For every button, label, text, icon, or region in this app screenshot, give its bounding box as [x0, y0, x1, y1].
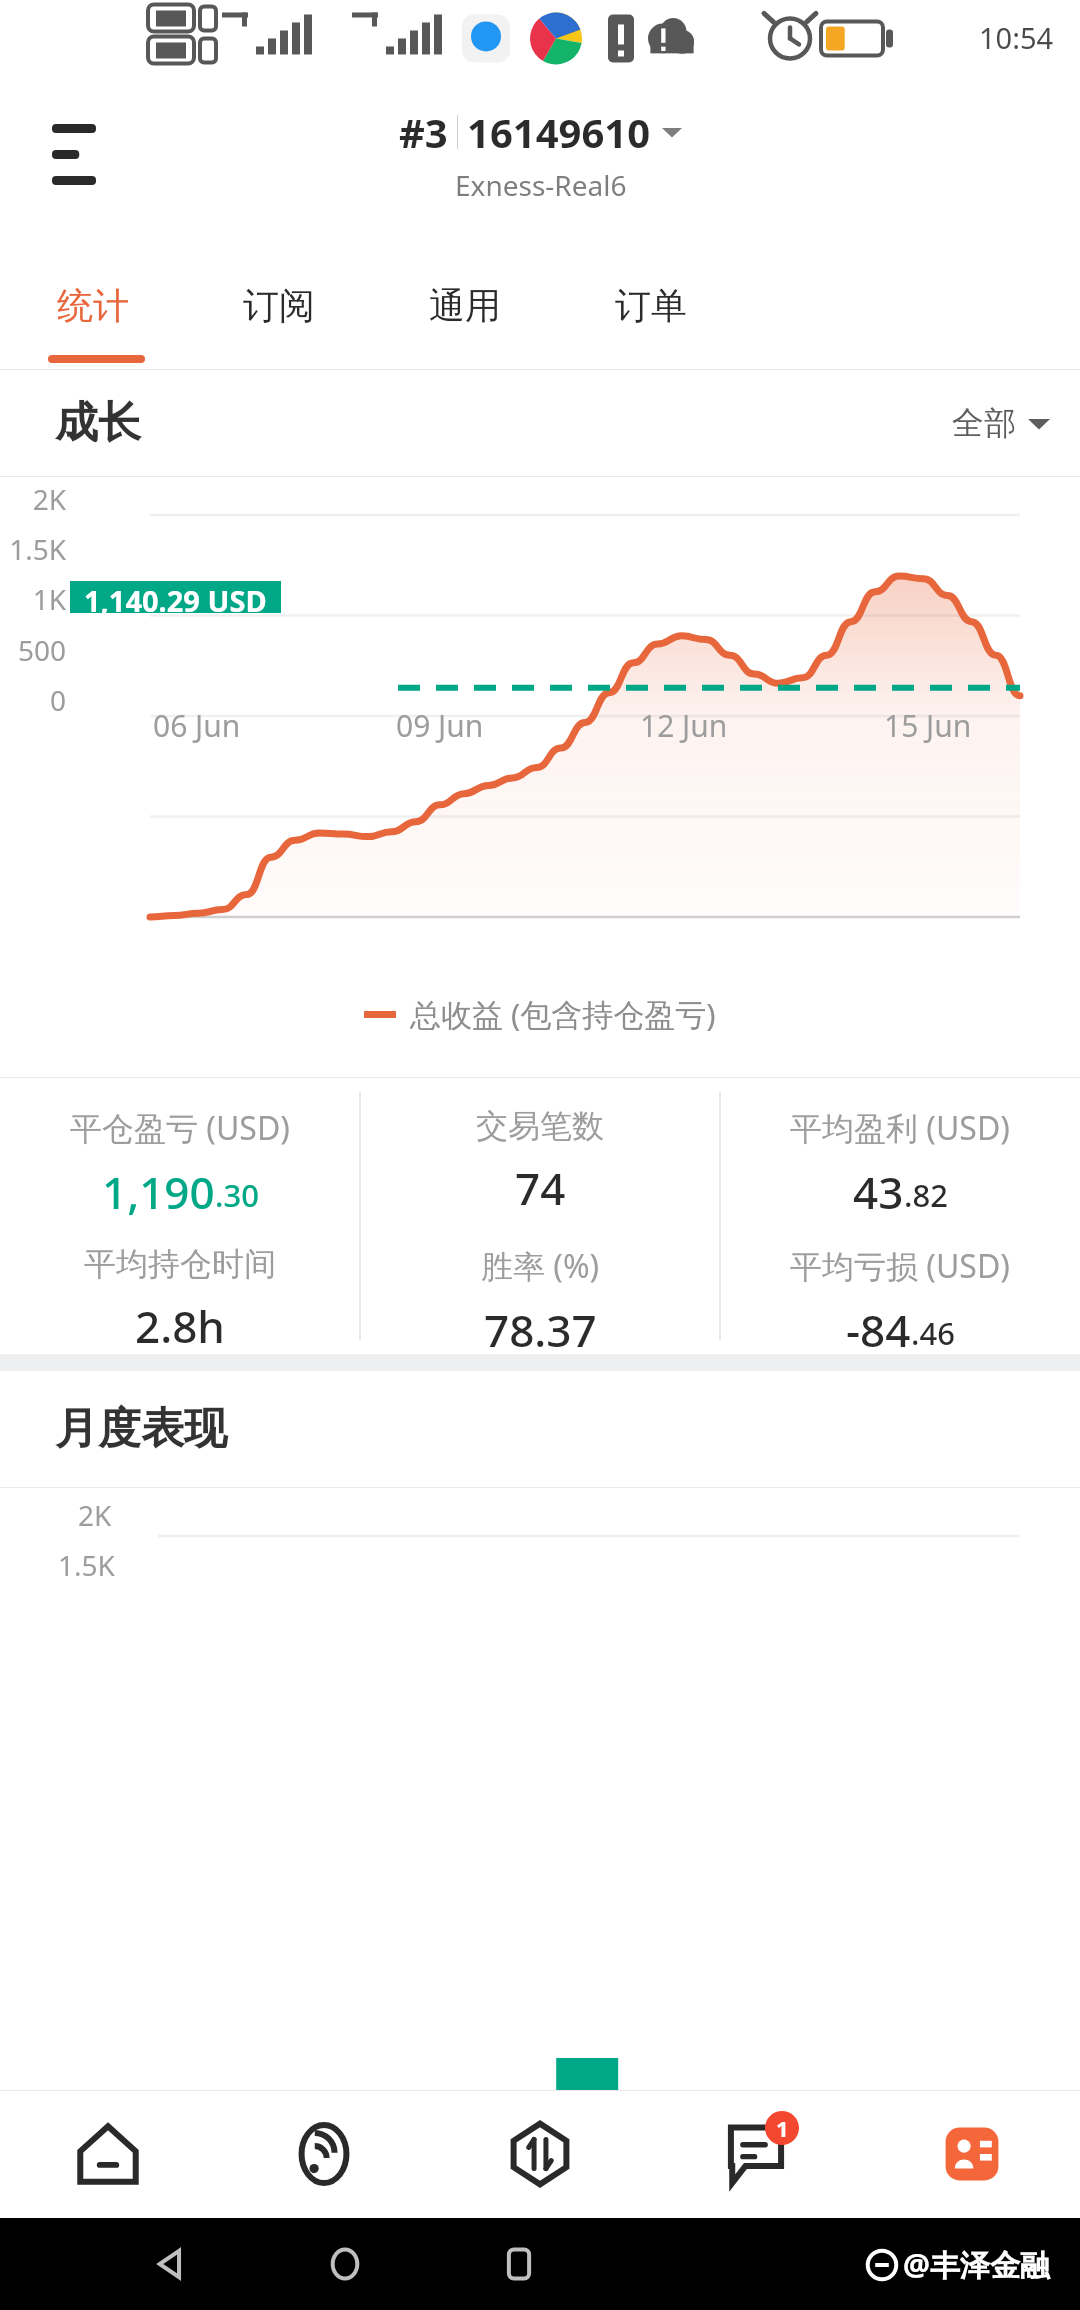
staticText: 10:54: [979, 18, 1054, 57]
button[interactable]: Recents: [497, 2242, 541, 2286]
staticText: 平均亏损 (USD): [790, 1244, 1010, 1288]
staticText: 订阅: [243, 283, 315, 328]
button[interactable]: 统计: [0, 234, 186, 369]
staticText: 43: [853, 1162, 904, 1216]
staticText: 78.37: [484, 1300, 597, 1354]
staticText: 平均持仓时间: [84, 1244, 276, 1284]
staticText: 1: [776, 2113, 789, 2143]
staticText: 2K: [0, 480, 66, 518]
staticText: -84: [846, 1300, 911, 1354]
staticText: #3: [399, 105, 448, 159]
button[interactable]: Home: [0, 2090, 216, 2218]
staticText: 统计: [57, 283, 129, 328]
button[interactable]: Back: [150, 2242, 194, 2286]
staticText: 2K: [78, 1496, 112, 1534]
staticText: @丰泽金融: [903, 2244, 1050, 2285]
staticText: 月度表现: [55, 1402, 227, 1456]
staticText: .30: [215, 1174, 259, 1216]
button[interactable]: 订单: [558, 234, 744, 369]
staticText: 09 Jun: [396, 705, 484, 746]
button[interactable]: Menu: [38, 118, 110, 190]
staticText: 1.5K: [0, 530, 66, 568]
staticText: 2.8h: [135, 1296, 225, 1354]
button[interactable]: Messages: [648, 2090, 864, 2218]
staticText: 74: [515, 1158, 566, 1216]
staticText: 订单: [615, 283, 687, 328]
button[interactable]: 通用: [372, 234, 558, 369]
button[interactable]: Profile: [864, 2090, 1080, 2218]
staticText: 06 Jun: [153, 705, 241, 746]
staticText: 1.5K: [58, 1546, 115, 1584]
staticText: .82: [904, 1174, 948, 1216]
staticText: 0: [0, 681, 66, 719]
staticText: 15 Jun: [884, 705, 972, 746]
staticText: 通用: [429, 283, 501, 328]
staticText: 交易笔数: [476, 1106, 604, 1146]
staticText: 16149610: [467, 105, 651, 159]
staticText: 平均盈利 (USD): [790, 1106, 1010, 1150]
button[interactable]: 全部: [952, 403, 1050, 443]
staticText: 成长: [55, 396, 141, 450]
staticText: 平仓盈亏 (USD): [70, 1106, 290, 1150]
button[interactable]: #3: [399, 105, 682, 204]
staticText: 总收益 (包含持仓盈亏): [410, 993, 716, 1035]
staticText: 1,190: [102, 1162, 215, 1216]
staticText: 1,140.29 USD: [84, 581, 267, 613]
staticText: 12 Jun: [640, 705, 728, 746]
staticText: 全部: [952, 403, 1016, 443]
button[interactable]: 订阅: [186, 234, 372, 369]
staticText: .46: [911, 1312, 955, 1354]
button[interactable]: Home: [323, 2242, 367, 2286]
staticText: Exness-Real6: [455, 166, 627, 204]
button[interactable]: Trade: [432, 2090, 648, 2218]
staticText: 1K: [0, 580, 66, 618]
staticText: 胜率 (%): [481, 1244, 600, 1288]
staticText: 500: [0, 631, 66, 669]
button[interactable]: Signals: [216, 2090, 432, 2218]
